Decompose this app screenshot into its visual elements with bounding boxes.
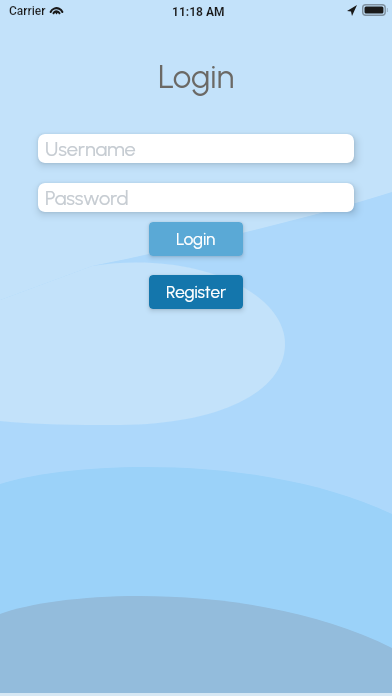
- button[interactable]: Register: [149, 275, 243, 309]
- staticText: Username: [45, 137, 136, 161]
- staticText: Password: [45, 186, 129, 210]
- staticText: Carrier: [9, 4, 46, 18]
- staticText: Login: [176, 229, 216, 249]
- staticText: Register: [166, 282, 226, 302]
- other: Location: [347, 5, 357, 16]
- staticText: 11:18 AM: [172, 5, 225, 19]
- other: Battery: [362, 4, 388, 16]
- button[interactable]: Username: [38, 134, 354, 163]
- staticText: Login: [0, 57, 392, 97]
- button[interactable]: Login: [149, 222, 243, 256]
- other: Wi-Fi: [49, 4, 64, 14]
- button[interactable]: Password: [38, 183, 354, 212]
